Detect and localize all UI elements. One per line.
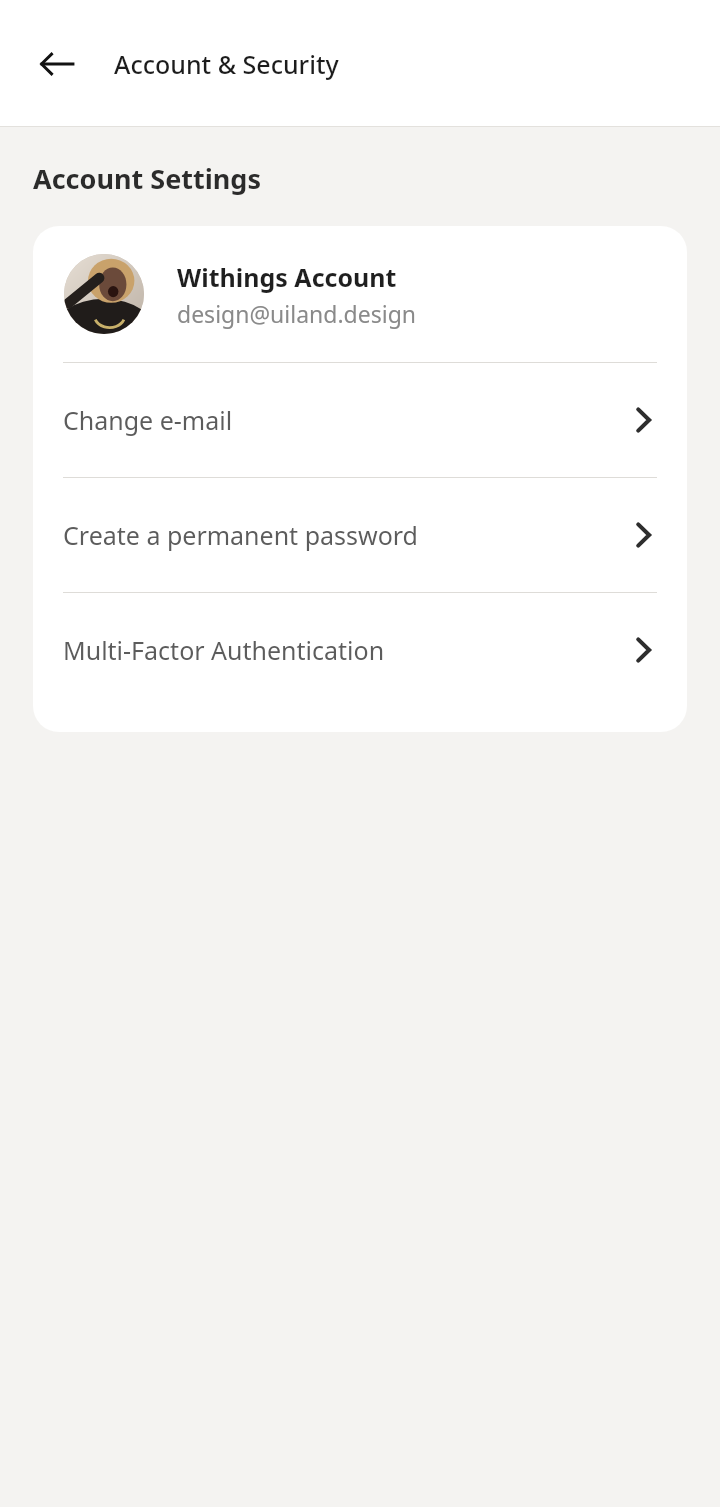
- staticText: Account Settings: [33, 160, 261, 197]
- staticText: Create a permanent password: [63, 518, 629, 552]
- staticText: Multi-Factor Authentication: [63, 633, 629, 667]
- button[interactable]: Withings Account: [33, 226, 687, 362]
- staticText: Withings Account: [177, 260, 397, 294]
- button[interactable]: Change e-mail: [33, 363, 687, 477]
- staticText: Change e-mail: [63, 403, 629, 437]
- button[interactable]: Back: [25, 32, 89, 96]
- button[interactable]: Multi-Factor Authentication: [33, 593, 687, 707]
- staticText: Account & Security: [114, 47, 339, 81]
- staticText: design@uiland.design: [177, 298, 417, 329]
- button[interactable]: Create a permanent password: [33, 478, 687, 592]
